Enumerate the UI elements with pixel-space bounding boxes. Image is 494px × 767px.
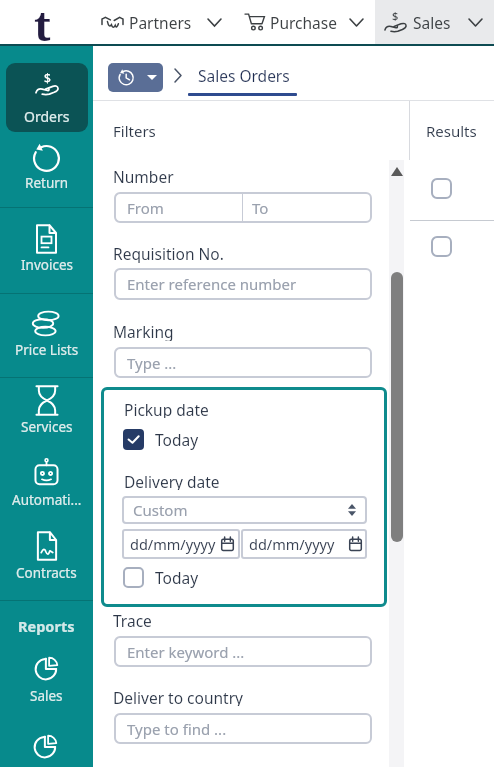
button[interactable]: From bbox=[114, 192, 372, 223]
staticText: To bbox=[252, 198, 269, 218]
button[interactable]: $ bbox=[6, 63, 88, 132]
button[interactable] bbox=[375, 0, 494, 44]
staticText: Services bbox=[21, 418, 73, 435]
staticText: Enter reference number bbox=[127, 274, 297, 294]
staticText: Custom bbox=[133, 500, 188, 520]
staticText: dd/mm/yyyy bbox=[130, 534, 216, 554]
button[interactable]: dd/mm/yyyy bbox=[241, 529, 367, 559]
button[interactable] bbox=[108, 63, 163, 92]
staticText: Type ... bbox=[127, 353, 177, 373]
button[interactable] bbox=[123, 567, 144, 588]
staticText: Marking bbox=[113, 321, 174, 341]
button[interactable]: Enter reference number bbox=[114, 268, 372, 300]
staticText: Automati... bbox=[12, 491, 82, 508]
button[interactable]: Type ... bbox=[114, 347, 372, 378]
button[interactable]: Sales bbox=[0, 653, 93, 705]
staticText: Orders bbox=[24, 107, 70, 126]
button[interactable]: Price Lists bbox=[0, 307, 93, 359]
staticText: Sales bbox=[30, 687, 63, 704]
button[interactable] bbox=[123, 429, 144, 450]
staticText: $ bbox=[44, 70, 51, 84]
button[interactable]: Custom bbox=[122, 496, 367, 524]
staticText: t bbox=[34, 0, 52, 46]
staticText: Today bbox=[155, 429, 199, 450]
button[interactable] bbox=[431, 236, 452, 257]
button[interactable] bbox=[96, 0, 228, 44]
staticText: Purchase bbox=[270, 12, 337, 33]
button[interactable]: Enter keyword ... bbox=[114, 636, 372, 667]
staticText: Contracts bbox=[16, 564, 77, 581]
button[interactable]: Return bbox=[0, 140, 93, 192]
staticText: $ bbox=[392, 8, 399, 22]
staticText: Trace bbox=[113, 610, 152, 629]
staticText: Filters bbox=[113, 121, 156, 141]
staticText: Price Lists bbox=[15, 341, 79, 358]
button[interactable]: Automati... bbox=[0, 457, 93, 509]
button[interactable] bbox=[238, 0, 370, 44]
staticText: dd/mm/yyyy bbox=[249, 534, 335, 554]
staticText: Invoices bbox=[21, 256, 73, 273]
staticText: Results bbox=[426, 121, 477, 141]
staticText: Number bbox=[113, 166, 174, 186]
button[interactable]: Invoices bbox=[0, 222, 93, 274]
staticText: Reports bbox=[18, 616, 75, 636]
button[interactable]: dd/mm/yyyy bbox=[122, 529, 240, 559]
staticText: Type to find ... bbox=[127, 719, 227, 739]
staticText: Sales Orders bbox=[198, 65, 290, 86]
button[interactable]: Services bbox=[0, 384, 93, 436]
staticText: Sales bbox=[413, 12, 451, 33]
staticText: Enter keyword ... bbox=[127, 642, 245, 662]
staticText: Pickup date bbox=[124, 399, 209, 418]
staticText: Requisition No. bbox=[113, 243, 224, 263]
staticText: Partners bbox=[129, 12, 192, 33]
button[interactable]: Contracts bbox=[0, 530, 93, 582]
staticText: Delivery date bbox=[124, 471, 220, 490]
button[interactable] bbox=[431, 178, 452, 199]
staticText: Return bbox=[25, 174, 69, 191]
button[interactable]: Sales Orders bbox=[190, 60, 297, 90]
button[interactable]: Type to find ... bbox=[114, 713, 372, 744]
staticText: Today bbox=[155, 567, 199, 588]
staticText: Deliver to country bbox=[113, 687, 243, 706]
staticText: From bbox=[127, 198, 164, 218]
